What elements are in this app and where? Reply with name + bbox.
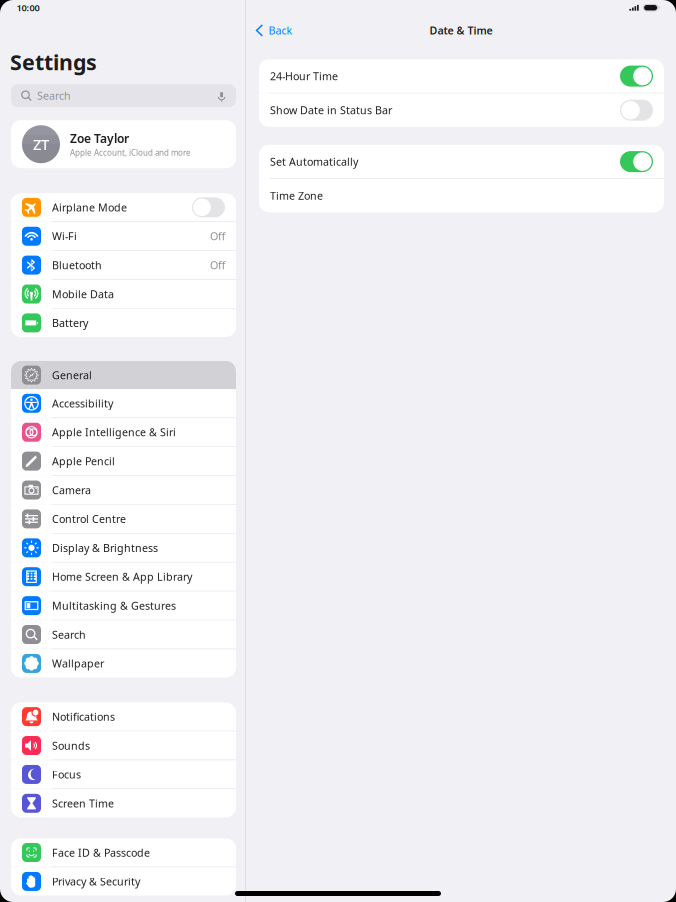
button[interactable]: Battery (11, 309, 236, 337)
staticText: 10:00 (16, 1, 39, 14)
button[interactable]: Bluetooth (11, 251, 236, 279)
staticText: Multitasking & Gestures (52, 598, 176, 613)
staticText: Search (52, 627, 86, 642)
button[interactable]: Focus (11, 760, 236, 788)
staticText: Off (210, 229, 225, 243)
staticText: Search (37, 89, 71, 103)
staticText: Apple Account, iCloud and more (70, 147, 191, 158)
staticText: Notifications (52, 709, 115, 724)
staticText: Set Automatically (270, 154, 358, 169)
staticText: Wi-Fi (52, 229, 77, 243)
button[interactable]: Apple Intelligence & Siri (11, 418, 236, 446)
staticText: Settings (10, 48, 97, 76)
staticText: Zoe Taylor (70, 130, 129, 146)
staticText: Apple Pencil (52, 454, 115, 468)
staticText: Home Screen & App Library (52, 570, 192, 584)
staticText: Time Zone (270, 189, 323, 203)
staticText: Battery (52, 316, 88, 330)
staticText: Control Centre (52, 512, 126, 526)
staticText: Screen Time (52, 796, 114, 810)
button[interactable]: ZT (11, 120, 236, 168)
button[interactable]: Accessibility (11, 389, 236, 417)
button[interactable]: Back (246, 18, 292, 42)
button[interactable]: Wi-Fi (11, 222, 236, 250)
button[interactable]: Control Centre (11, 505, 236, 533)
button[interactable]: Mobile Data (11, 280, 236, 308)
button[interactable]: Display & Brightness (11, 534, 236, 562)
staticText: Camera (52, 483, 91, 497)
button[interactable]: Time Zone (259, 179, 664, 212)
staticText: Apple Intelligence & Siri (52, 425, 176, 439)
staticText: Wallpaper (52, 656, 104, 670)
button[interactable]: Screen Time (11, 789, 236, 817)
button[interactable]: Privacy & Security (11, 867, 236, 895)
staticText: Privacy & Security (52, 874, 140, 888)
button[interactable]: General (11, 361, 236, 389)
staticText: Back (268, 23, 292, 37)
staticText: Date & Time (429, 23, 492, 37)
button[interactable]: Show Date in Status Bar (259, 93, 664, 127)
button[interactable]: Apple Pencil (11, 447, 236, 475)
staticText: Face ID & Passcode (52, 845, 150, 860)
button[interactable]: Search (11, 620, 236, 649)
staticText: Airplane Mode (52, 200, 127, 214)
staticText: ZT (33, 134, 49, 154)
staticText: Display & Brightness (52, 541, 158, 555)
staticText: Show Date in Status Bar (270, 103, 392, 117)
staticText: Off (210, 258, 225, 272)
button[interactable]: Notifications (11, 702, 236, 731)
button[interactable]: Multitasking & Gestures (11, 591, 236, 620)
button[interactable]: Camera (11, 476, 236, 504)
button[interactable]: 24-Hour Time (259, 59, 664, 93)
button[interactable]: Sounds (11, 731, 236, 760)
button[interactable]: Face ID & Passcode (11, 838, 236, 867)
staticText: Mobile Data (52, 287, 114, 301)
staticText: Sounds (52, 738, 90, 753)
staticText: Accessibility (52, 396, 113, 410)
button[interactable]: Airplane Mode (11, 193, 236, 221)
staticText: General (52, 368, 92, 382)
button[interactable]: Set Automatically (259, 145, 664, 178)
staticText: 24-Hour Time (270, 69, 338, 83)
staticText: Focus (52, 767, 81, 781)
staticText: Bluetooth (52, 258, 102, 272)
button[interactable]: Wallpaper (11, 649, 236, 677)
button[interactable]: Home Screen & App Library (11, 563, 236, 591)
